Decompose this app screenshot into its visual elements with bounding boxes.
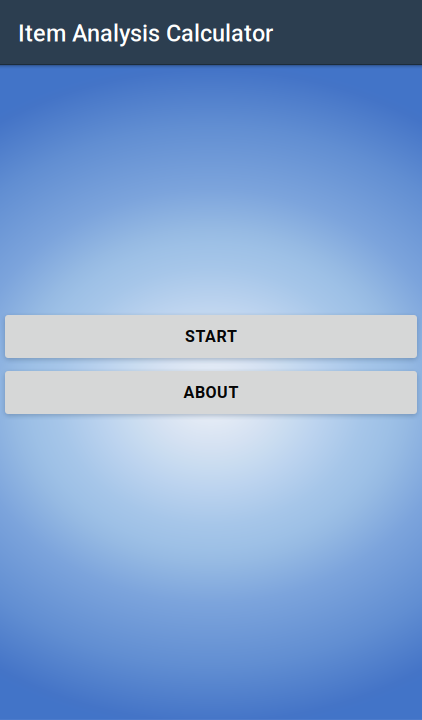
button[interactable]: START <box>5 315 417 358</box>
button[interactable]: ABOUT <box>5 371 417 414</box>
staticText: START <box>185 327 237 346</box>
staticText: ABOUT <box>183 383 239 402</box>
staticText: Item Analysis Calculator <box>18 20 273 47</box>
